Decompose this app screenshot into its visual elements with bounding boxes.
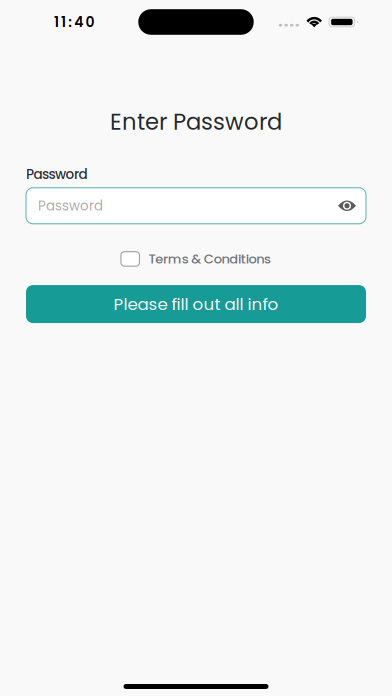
- button[interactable]: Please fill out all info: [26, 285, 366, 323]
- button[interactable]: Terms & Conditions: [121, 250, 271, 268]
- staticText: Enter Password: [110, 106, 282, 138]
- button[interactable]: Show password: [338, 200, 356, 212]
- staticText: Terms & Conditions: [148, 250, 271, 268]
- staticText: Please fill out all info: [113, 292, 278, 316]
- staticText: 11:40: [54, 12, 94, 32]
- staticText: Password: [38, 196, 103, 215]
- staticText: Password: [26, 165, 87, 184]
